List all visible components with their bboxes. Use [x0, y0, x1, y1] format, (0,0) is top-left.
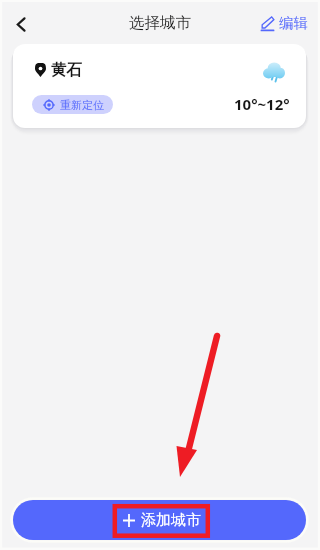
button[interactable]: 黄石 — [13, 44, 306, 128]
button[interactable]: 重新定位 — [32, 95, 113, 114]
staticText: 编辑 — [279, 14, 308, 32]
button[interactable]: 编辑 — [259, 14, 308, 32]
staticText: 添加城市 — [141, 511, 201, 530]
staticText: 10°~12° — [234, 94, 290, 114]
button[interactable]: 添加城市 — [13, 500, 306, 540]
staticText: 黄石 — [51, 60, 82, 80]
staticText: 重新定位 — [60, 98, 104, 112]
button[interactable]: Back — [7, 10, 35, 38]
staticText: 选择城市 — [129, 13, 191, 33]
